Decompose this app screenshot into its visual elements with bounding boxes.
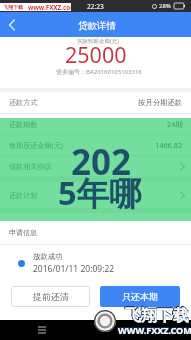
staticText: 22:23 [87, 2, 104, 11]
staticText: WWW.FXXZ.COM [117, 323, 191, 335]
staticText: 申请信息 [9, 228, 37, 237]
button[interactable]: 还款期数 [0, 114, 191, 134]
staticText: 借款相关协议 [9, 162, 52, 171]
staticText: 飞翔下载 [124, 306, 188, 326]
staticText: 28% [159, 2, 171, 10]
button[interactable]: 还款计划 [0, 182, 191, 208]
staticText: WWW.FXXZ.COM [119, 323, 191, 335]
staticText: 飞翔下载 [125, 306, 189, 326]
staticText: 放款成功 [33, 252, 63, 261]
staticText: 飞翔下载 [124, 305, 188, 325]
staticText: 飞翔下载 [125, 306, 189, 326]
staticText: WWW.FXXZ.COM [119, 324, 191, 336]
staticText: WWW.FXXZ.COM [117, 324, 191, 336]
staticText: 还款方式 [9, 98, 38, 107]
staticText: www.FXXZ.com [28, 3, 71, 11]
staticText: 只还本期 [122, 291, 158, 302]
button[interactable]: 提前还清 [11, 286, 90, 307]
staticText: 1466.82 [155, 140, 183, 150]
staticText: 贷款详情 [78, 20, 116, 32]
staticText: 25000 [65, 40, 127, 69]
staticText: 202 [71, 138, 132, 186]
staticText: 24期 [167, 119, 183, 129]
staticText: WWW.FXXZ.COM [118, 324, 191, 336]
staticText: WWW.FXXZ.COM [118, 324, 191, 336]
staticText: 债务编号：BA20160105103316 [56, 68, 142, 76]
staticText: 2016/01/11 20:09:22 [33, 263, 115, 275]
staticText: 实际到账金额(元) [77, 37, 119, 45]
button[interactable]: Recents [34, 322, 50, 338]
button[interactable]: 只还本期 [100, 286, 180, 307]
staticText: 飞翔下载 [3, 4, 23, 10]
staticText: 按月分期还款 [138, 98, 183, 107]
staticText: WWW.FXXZ.COM [117, 324, 191, 336]
button[interactable]: 每期应还金额(元) [0, 135, 191, 155]
staticText: 飞翔下载 [125, 305, 189, 325]
staticText: 还款计划 [9, 191, 38, 200]
staticText: 提前还清 [33, 291, 69, 302]
staticText: 还款期数 [9, 120, 38, 129]
staticText: 5年哪 [58, 170, 142, 214]
staticText: WWW.FXXZ.COM [118, 323, 191, 335]
staticText: 飞翔下载 [125, 306, 189, 326]
button[interactable]: Back [0, 13, 22, 37]
button[interactable]: 借款相关协议 [0, 156, 191, 176]
staticText: 飞翔下载 [125, 305, 189, 325]
staticText: 飞翔下载 [124, 306, 188, 326]
staticText: 每期应还金额(元) [9, 140, 63, 150]
staticText: 飞翔下载 [125, 306, 189, 326]
staticText: WWW.FXXZ.COM [119, 324, 191, 336]
button[interactable]: 还款方式 [0, 92, 191, 113]
